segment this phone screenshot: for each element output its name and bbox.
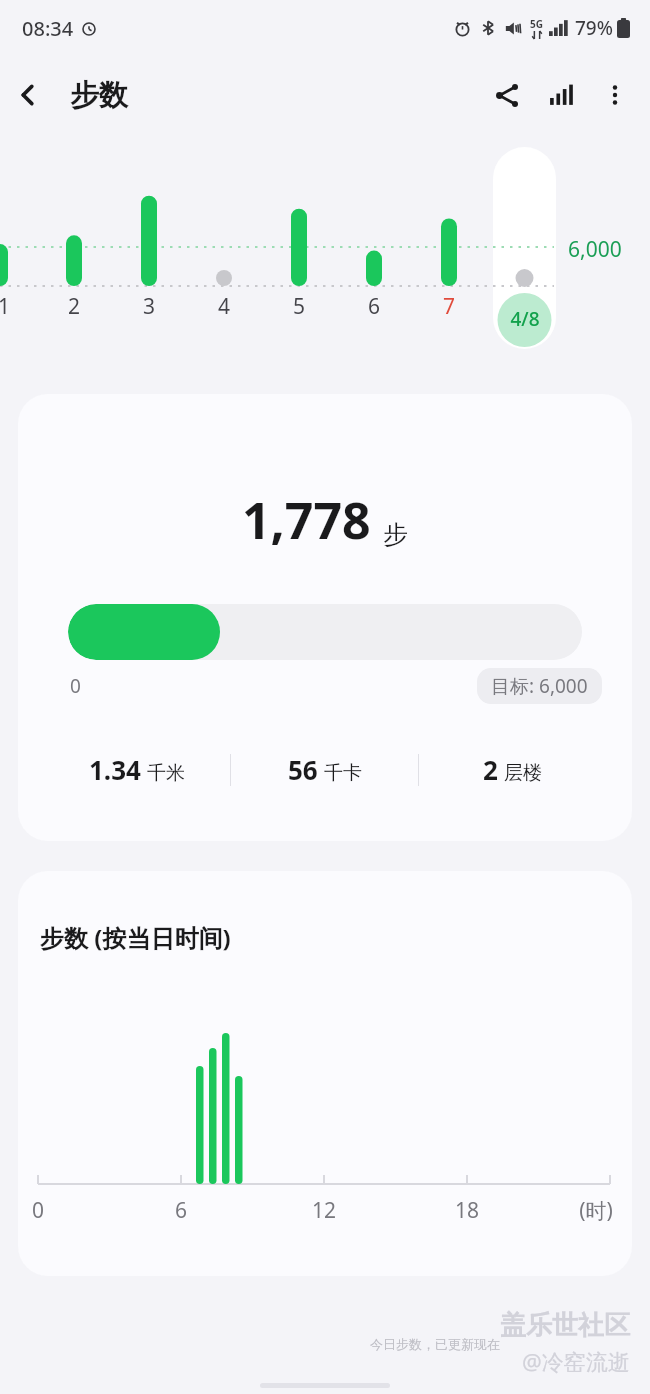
staticText: 18 <box>445 1196 489 1225</box>
button[interactable]: 56 <box>231 752 418 787</box>
staticText: 7 <box>429 292 469 321</box>
button[interactable]: Share <box>480 68 534 122</box>
staticText: 4/8 <box>504 306 546 332</box>
staticText: 0 <box>18 1196 60 1225</box>
staticText: 0 <box>70 673 81 699</box>
staticText: 步数 <box>70 77 128 114</box>
staticText: 步 <box>383 519 408 550</box>
staticText: 12 <box>302 1196 346 1225</box>
staticText: 6 <box>354 292 394 321</box>
staticText: (时) <box>574 1196 618 1225</box>
staticText: 2 <box>483 752 498 787</box>
button[interactable]: More options <box>588 68 642 122</box>
staticText: 08:34 <box>22 15 74 42</box>
button[interactable]: 1.34 <box>44 752 230 787</box>
staticText: 盖乐世社区 <box>500 1309 630 1342</box>
staticText: /1 <box>0 292 20 321</box>
staticText: 1.34 <box>89 752 141 787</box>
staticText: 1,778 <box>242 486 371 554</box>
staticText: 千米 <box>147 761 185 785</box>
button[interactable]: 2 <box>419 752 606 787</box>
staticText: 56 <box>288 752 318 787</box>
staticText: 5G <box>530 17 543 31</box>
staticText: 3 <box>129 292 169 321</box>
staticText: @冷窑流逝 <box>522 1346 630 1376</box>
staticText: 层楼 <box>504 761 542 785</box>
staticText: 6,000 <box>568 235 622 264</box>
button[interactable]: Chart <box>534 68 588 122</box>
staticText: 步数 (按当日时间) <box>40 921 231 954</box>
staticText: 79% <box>575 15 613 41</box>
staticText: 千卡 <box>324 761 362 785</box>
staticText: 5 <box>279 292 319 321</box>
staticText: 2 <box>54 292 94 321</box>
staticText: 6 <box>159 1196 203 1225</box>
button[interactable]: Back <box>0 67 56 123</box>
staticText: 目标: 6,000 <box>491 673 588 699</box>
staticText: 4 <box>204 292 244 321</box>
staticText: 今日步数，已更新现在 <box>370 1336 500 1352</box>
